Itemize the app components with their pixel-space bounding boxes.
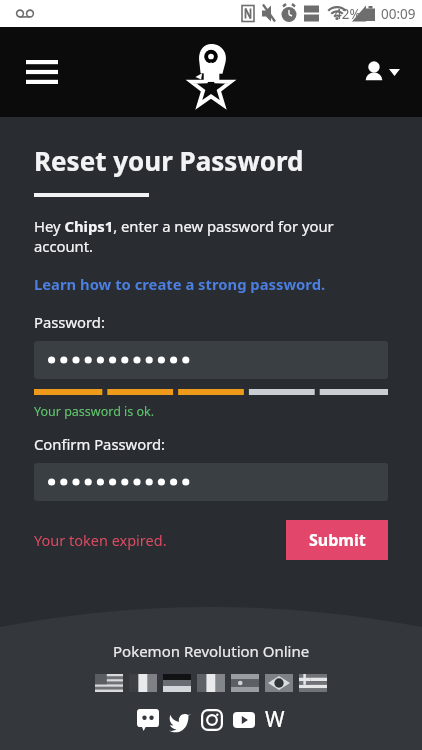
button[interactable]: Submit [286,520,388,560]
staticText: Pokemon Revolution Online [113,641,310,661]
button[interactable]: Open menu [18,48,66,96]
button[interactable] [34,341,388,379]
staticText: Your token expired. [34,530,167,550]
button[interactable]: Portuguese [265,674,293,692]
staticText: Reset your Password [34,143,304,178]
staticText: Your password is ok. [34,403,155,420]
button[interactable]: French [129,674,157,692]
button[interactable]: Pokemon Revolution Online logo [180,41,242,103]
button[interactable]: Italian [197,674,225,692]
staticText: Submit [309,529,366,551]
staticText: 00:09 [381,5,416,23]
button[interactable] [34,463,388,501]
button[interactable]: Spanish [231,674,259,692]
button[interactable]: YouTube [233,709,255,731]
button[interactable]: Twitter [169,709,191,731]
staticText: Hey Chips1, enter a new password for you… [34,216,388,256]
staticText: Confirm Password: [34,434,166,454]
button[interactable]: Learn how to create a strong password. [34,274,326,294]
staticText: W [265,705,285,734]
button[interactable]: Discord [137,709,159,731]
staticText: Password: [34,312,105,332]
button[interactable]: Instagram [201,709,223,731]
button[interactable]: Greek [299,674,327,692]
button[interactable]: Account [363,61,400,83]
staticText: 42% [334,5,361,23]
button[interactable]: Wikipedia [265,705,285,734]
staticText: Learn how to create a strong password. [34,274,326,294]
button[interactable]: German [163,674,191,692]
button[interactable]: English [95,674,123,692]
